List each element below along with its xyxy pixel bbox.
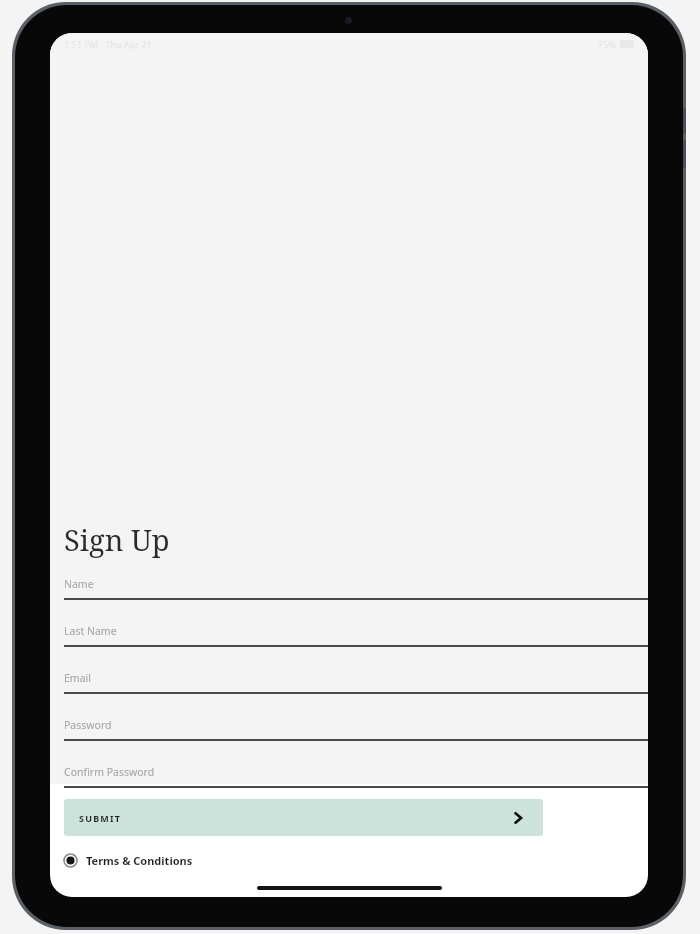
button[interactable]: Terms & Conditions <box>50 848 648 872</box>
button[interactable]: SUBMIT <box>64 799 543 836</box>
staticText: Last Name <box>64 624 117 638</box>
staticText: Name <box>64 577 94 591</box>
button[interactable]: Confirm Password <box>50 765 648 812</box>
staticText: Sign Up <box>64 520 170 559</box>
button[interactable]: Last Name <box>50 624 648 671</box>
staticText: SUBMIT <box>79 812 122 824</box>
staticText: Password <box>64 718 112 732</box>
staticText: 75% <box>598 38 616 50</box>
button[interactable]: Name <box>50 577 648 624</box>
staticText: 1:51 PM Thu Apr 21 <box>64 38 152 50</box>
staticText: Terms & Conditions <box>86 853 193 868</box>
button[interactable]: Password <box>50 718 648 765</box>
staticText: Confirm Password <box>64 765 155 779</box>
button[interactable]: Email <box>50 671 648 718</box>
staticText: Email <box>64 671 91 685</box>
